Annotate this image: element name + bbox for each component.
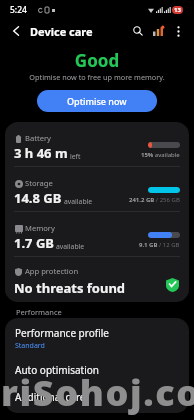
staticText: 13 (174, 6, 181, 14)
staticText: 14.8 GB (14, 189, 62, 207)
staticText: Performance profile (15, 326, 109, 340)
staticText: Storage (25, 178, 53, 188)
staticText: Additional care (15, 390, 86, 404)
staticText: Auto optimisation (15, 363, 99, 377)
staticText: Memory (25, 223, 55, 233)
staticText: Battery (25, 133, 51, 143)
staticText: Device care (30, 24, 93, 39)
button[interactable]: Storage (5, 167, 189, 212)
button[interactable]: Performance profile (5, 321, 189, 356)
staticText: 1.7 GB (14, 234, 54, 252)
button[interactable]: Search (129, 22, 147, 40)
staticText: available (64, 197, 93, 206)
button[interactable]: App protection (5, 257, 189, 302)
staticText: left (70, 152, 81, 161)
staticText: Standard (15, 341, 45, 351)
staticText: Optimise now (67, 95, 127, 107)
staticText: Performance (16, 307, 62, 317)
staticText: 9.1 GB / 12 GB (139, 241, 180, 249)
staticText: Optimise now to free up more memory. (0, 72, 194, 82)
staticText: riSohoj.co (1, 368, 194, 417)
staticText: Good (0, 49, 194, 72)
staticText: 15% available (141, 151, 180, 159)
button[interactable]: Additional care (5, 383, 189, 410)
button[interactable]: Optimise now (37, 90, 157, 112)
button[interactable]: Auto optimisation (5, 356, 189, 383)
button[interactable]: More options (169, 22, 187, 40)
button[interactable]: Statistics (149, 22, 167, 40)
staticText: 5:24 (10, 4, 27, 16)
staticText: No threats found (14, 279, 126, 297)
staticText: App protection (25, 266, 79, 276)
staticText: 241.2 GB / 256 GB (129, 196, 180, 204)
button[interactable]: Memory (5, 212, 189, 257)
button[interactable]: Battery (5, 122, 189, 167)
button[interactable]: Back (6, 21, 26, 41)
staticText: available (56, 242, 85, 251)
staticText: 3 h 46 m (14, 144, 68, 162)
